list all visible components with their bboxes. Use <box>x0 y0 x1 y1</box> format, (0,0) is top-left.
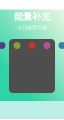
staticText: 能量补充 <box>14 11 50 22</box>
staticText: 今日推荐方案 <box>17 24 47 31</box>
